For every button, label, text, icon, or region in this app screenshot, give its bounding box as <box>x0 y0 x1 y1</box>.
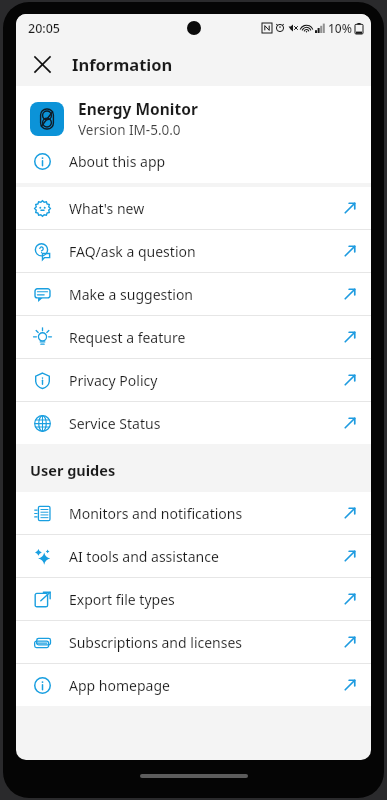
staticText: 10% <box>328 20 352 36</box>
staticText: Service Status <box>69 414 343 433</box>
staticText: AI tools and assistance <box>69 547 343 566</box>
staticText: 20:05 <box>28 20 61 37</box>
button[interactable]: Subscriptions and licenses <box>16 621 371 663</box>
staticText: Subscriptions and licenses <box>69 633 343 652</box>
button[interactable]: Privacy Policy <box>16 359 371 401</box>
button[interactable]: Service Status <box>16 402 371 444</box>
staticText: Privacy Policy <box>69 371 343 390</box>
button[interactable]: AI tools and assistance <box>16 535 371 577</box>
button[interactable]: Close <box>24 46 60 82</box>
staticText: What's new <box>69 199 343 218</box>
staticText: App homepage <box>69 676 343 695</box>
staticText: Request a feature <box>69 328 343 347</box>
staticText: Energy Monitor <box>78 98 198 119</box>
button[interactable]: FAQ/ask a question <box>16 230 371 272</box>
staticText: About this app <box>69 152 166 171</box>
staticText: Export file types <box>69 590 343 609</box>
button[interactable]: Request a feature <box>16 316 371 358</box>
staticText: User guides <box>30 460 116 480</box>
button[interactable]: About this app <box>16 139 371 183</box>
button[interactable]: App homepage <box>16 664 371 706</box>
button[interactable]: What's new <box>16 187 371 229</box>
staticText: Make a suggestion <box>69 285 343 304</box>
staticText: Information <box>72 53 173 75</box>
button[interactable]: Monitors and notifications <box>16 492 371 534</box>
button[interactable]: Export file types <box>16 578 371 620</box>
staticText: FAQ/ask a question <box>69 242 343 261</box>
staticText: Monitors and notifications <box>69 504 343 523</box>
staticText: Version IM-5.0.0 <box>78 121 181 139</box>
button[interactable]: Make a suggestion <box>16 273 371 315</box>
